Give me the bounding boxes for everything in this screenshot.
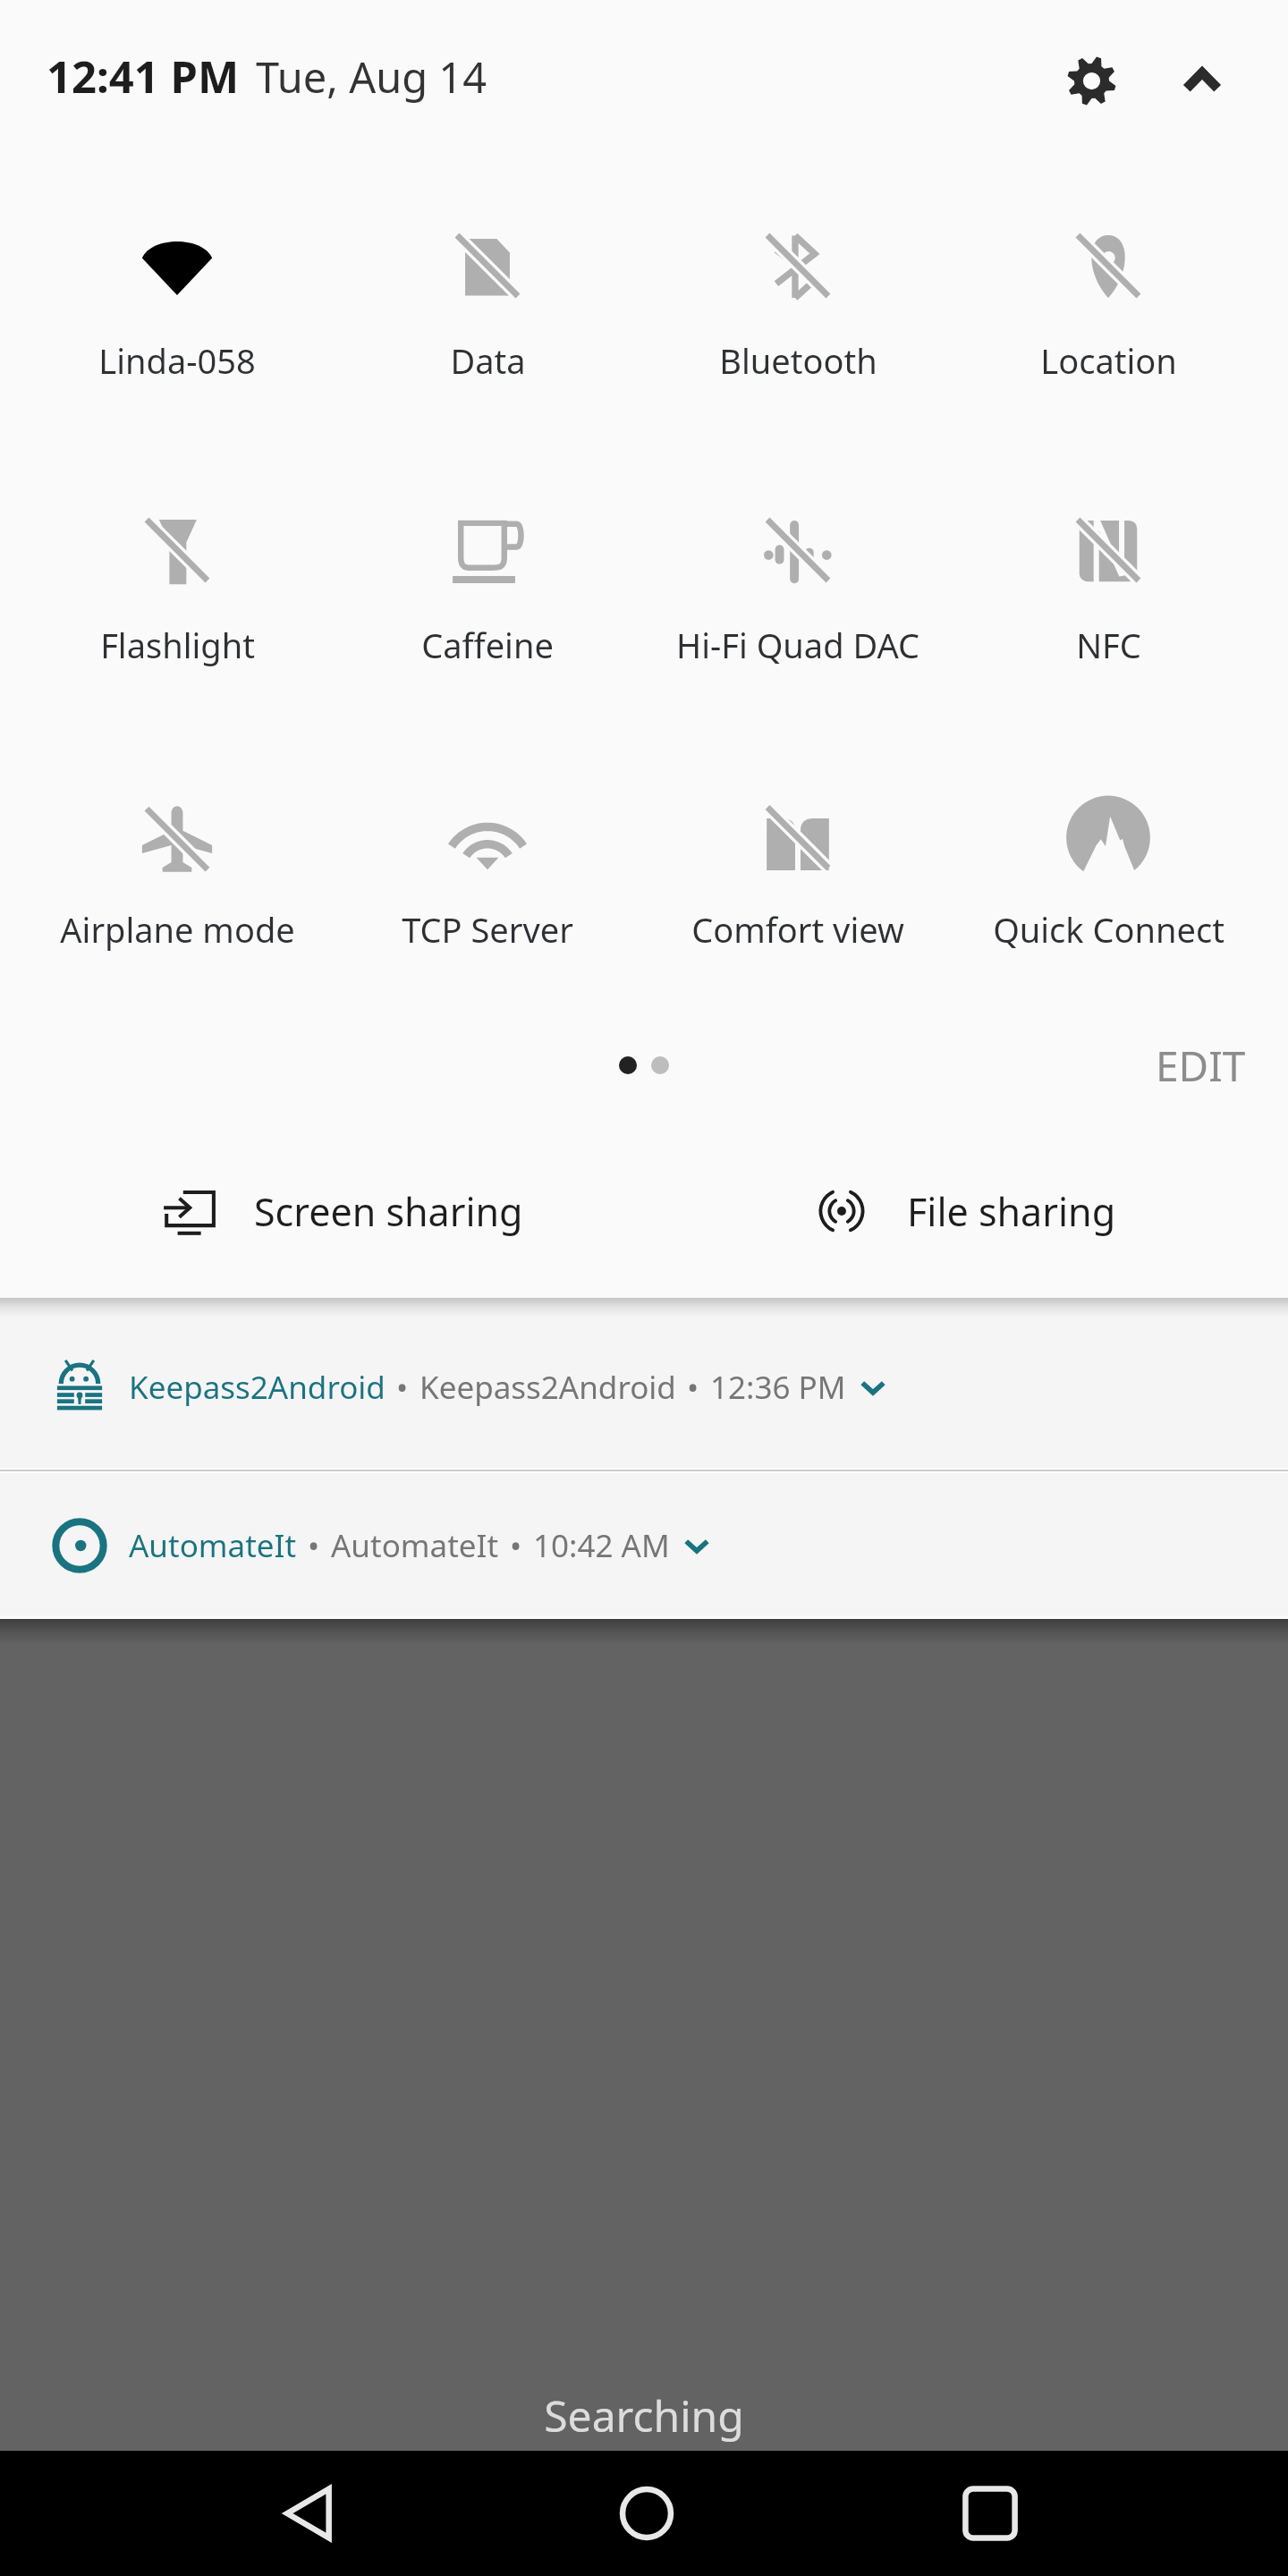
button[interactable]: Caffeine (333, 479, 642, 684)
staticText: Tue, Aug 14 (256, 48, 487, 106)
staticText: TCP Server (402, 906, 573, 953)
button[interactable]: TCP Server (333, 763, 642, 969)
button[interactable]: Location (953, 194, 1263, 400)
button[interactable]: NFC (953, 479, 1263, 684)
button[interactable]: Screen sharing (161, 1165, 523, 1258)
staticText: File sharing (907, 1185, 1116, 1238)
staticText: Linda-058 (98, 337, 256, 384)
staticText: Airplane mode (60, 906, 295, 953)
button[interactable]: Comfort view (643, 763, 953, 969)
button[interactable]: Home (575, 2451, 718, 2576)
staticText: 12:36 PM (710, 1366, 846, 1409)
button[interactable]: Data (333, 194, 642, 400)
button[interactable]: Recents (919, 2451, 1062, 2576)
button[interactable]: Airplane mode (22, 763, 332, 969)
staticText: Screen sharing (254, 1185, 523, 1238)
button[interactable]: File sharing (814, 1165, 1116, 1258)
staticText: EDIT (1156, 1038, 1246, 1094)
staticText: Searching (0, 2386, 1288, 2445)
staticText: Keepass2Android (419, 1366, 676, 1409)
button[interactable]: Settings (1042, 31, 1140, 130)
staticText: AutomateIt (129, 1524, 297, 1567)
staticText: Location (1040, 337, 1177, 384)
button[interactable]: AutomateIt (0, 1471, 1288, 1619)
staticText: Hi-Fi Quad DAC (676, 622, 919, 668)
staticText: Caffeine (421, 622, 554, 668)
staticText: • (502, 1524, 530, 1567)
button[interactable]: Hi-Fi Quad DAC (643, 479, 953, 684)
staticText: • (300, 1524, 328, 1567)
button[interactable]: Back (233, 2451, 377, 2576)
button[interactable]: Flashlight (22, 479, 332, 684)
staticText: AutomateIt (331, 1524, 499, 1567)
button[interactable]: Collapse (1153, 31, 1251, 130)
button[interactable]: Linda-058 (22, 194, 332, 400)
staticText: NFC (1076, 622, 1141, 668)
staticText: Flashlight (100, 622, 255, 668)
staticText: Data (450, 337, 526, 384)
staticText: • (679, 1366, 708, 1409)
button[interactable]: EDIT (1156, 1038, 1246, 1094)
staticText: 10:42 AM (533, 1524, 670, 1567)
staticText: 12:41 PM (47, 47, 240, 106)
staticText: Bluetooth (719, 337, 877, 384)
button[interactable] (619, 1056, 669, 1074)
button[interactable]: Bluetooth (643, 194, 953, 400)
staticText: Quick Connect (993, 906, 1224, 953)
staticText: • (388, 1366, 417, 1409)
staticText: Comfort view (691, 906, 904, 953)
staticText: Keepass2Android (129, 1366, 386, 1409)
button[interactable]: Quick Connect (953, 763, 1263, 969)
button[interactable]: Keepass2Android (0, 1306, 1288, 1469)
